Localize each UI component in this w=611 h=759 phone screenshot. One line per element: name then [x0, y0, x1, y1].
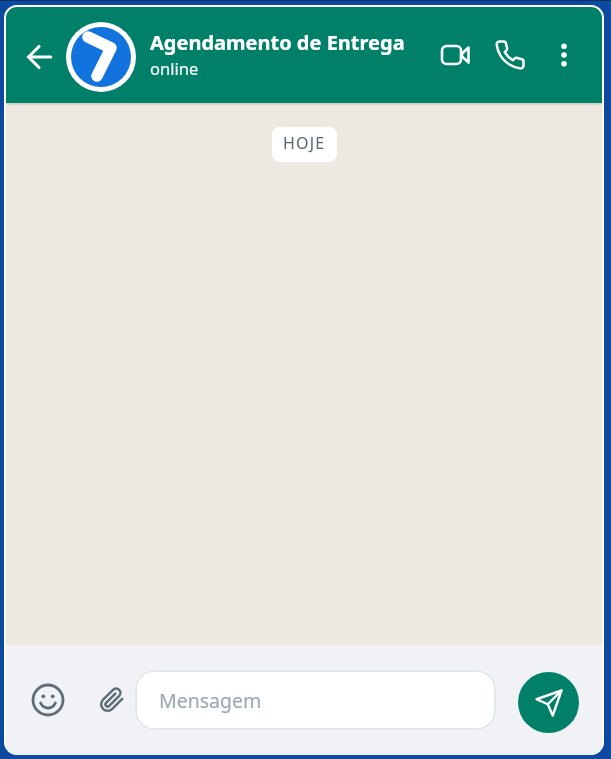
button[interactable] — [518, 672, 579, 733]
button[interactable] — [428, 7, 480, 103]
button[interactable] — [16, 7, 64, 103]
button[interactable] — [540, 7, 588, 103]
staticText: Agendamento de Entrega — [150, 29, 405, 56]
staticText: Mensagem — [159, 687, 262, 714]
button[interactable]: HOJE — [272, 127, 337, 162]
button[interactable]: Agendamento de Entrega — [150, 29, 428, 79]
button[interactable] — [66, 22, 136, 92]
staticText: HOJE — [283, 132, 326, 154]
staticText: online — [150, 57, 199, 79]
button[interactable]: Mensagem — [135, 670, 496, 730]
button[interactable] — [28, 680, 68, 720]
button[interactable] — [480, 7, 540, 103]
button[interactable] — [92, 680, 132, 720]
